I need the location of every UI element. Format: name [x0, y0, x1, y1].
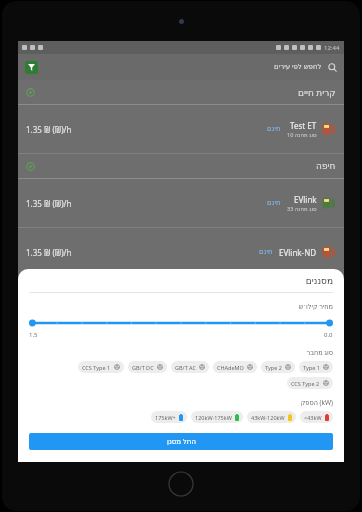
button[interactable]: CCS Type 2: [287, 377, 333, 389]
staticText: 175kW+: [155, 414, 176, 421]
staticText: 1.35 ₪ (₪)/h: [26, 124, 72, 135]
staticText: Test ET: [290, 120, 317, 131]
button[interactable]: Filter: [25, 61, 38, 74]
staticText: 43kW-120kW: [251, 414, 285, 421]
staticText: 1.35 ₪ (₪)/h: [26, 247, 72, 258]
staticText: מסננים: [29, 276, 333, 286]
staticText: EVlink-ND: [279, 247, 317, 258]
staticText: חינם: [259, 248, 273, 256]
button[interactable]: Type 1: [299, 361, 333, 373]
button[interactable]: <43kW: [300, 411, 333, 423]
staticText: CCS Type 2: [291, 380, 320, 387]
staticText: סוג תחנה 33: [287, 205, 317, 212]
button[interactable]: 1.35 ₪ (₪)/h: [18, 179, 344, 228]
staticText: סוג מחבר: [29, 348, 333, 357]
staticText: לחפש לפי עירים: [274, 62, 322, 72]
staticText: 1.5: [29, 331, 38, 339]
staticText: CHAdeMO: [217, 364, 244, 371]
button[interactable]: Filter: [25, 54, 337, 80]
button[interactable]: החל מסנן: [29, 433, 333, 450]
staticText: GB/T DC: [132, 364, 154, 371]
staticText: 120kW-175kW: [195, 414, 232, 421]
other: Search: [328, 63, 337, 72]
staticText: <43kW: [304, 414, 322, 421]
staticText: מחיר קילו׳ש: [29, 302, 333, 311]
button[interactable]: 120kW-175kW: [191, 411, 243, 423]
button[interactable]: 1.35 ₪ (₪)/h: [18, 228, 344, 277]
staticText: 1.35 ₪ (₪)/h: [26, 198, 72, 209]
button[interactable]: 175kW+: [151, 411, 187, 423]
button[interactable]: CCS Type 1: [78, 361, 124, 373]
staticText: חינם: [267, 199, 281, 207]
staticText: 12:44: [324, 44, 340, 52]
button[interactable]: GB/T DC: [128, 361, 167, 373]
staticText: CCS Type 1: [82, 364, 111, 371]
staticText: EVlink: [294, 194, 317, 205]
button[interactable]: 1.35 ₪ (₪)/h: [18, 105, 344, 154]
button[interactable]: GB/T AC: [171, 361, 209, 373]
button[interactable]: Type 2: [261, 361, 295, 373]
staticText: 0.0: [324, 331, 333, 339]
button[interactable]: 43kW-120kW: [247, 411, 296, 423]
staticText: חיפה: [316, 161, 336, 171]
staticText: קרית חיים: [298, 86, 336, 98]
staticText: GB/T AC: [175, 364, 196, 371]
button[interactable]: CHAdeMO: [213, 361, 257, 373]
staticText: Type 1: [303, 364, 320, 371]
staticText: החל מסנן: [167, 437, 196, 447]
staticText: Type 2: [265, 364, 282, 371]
staticText: חינם: [267, 125, 281, 133]
staticText: הספק (kW): [29, 398, 333, 407]
staticText: סוג תחנה 10: [287, 131, 317, 138]
